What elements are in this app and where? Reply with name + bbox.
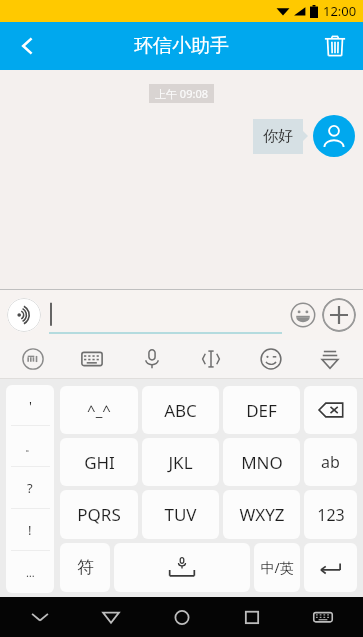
button[interactable] xyxy=(49,296,282,334)
button[interactable]: Space xyxy=(114,543,250,592)
button[interactable]: TUV xyxy=(142,490,219,539)
staticText: ! xyxy=(28,521,32,539)
button[interactable]: GHI xyxy=(60,438,138,486)
staticText: 你好 xyxy=(263,127,293,146)
button[interactable]: ^_^ xyxy=(60,386,138,434)
button[interactable]: Emoji panel xyxy=(254,342,288,376)
staticText: TUV xyxy=(164,503,197,526)
staticText: ? xyxy=(27,479,33,497)
button[interactable]: Back xyxy=(8,26,48,66)
staticText: JKL xyxy=(168,451,193,474)
staticText: DEF xyxy=(246,399,277,422)
button[interactable]: … xyxy=(6,551,54,593)
button[interactable]: ABC xyxy=(142,386,219,434)
button[interactable]: 123 xyxy=(304,490,357,539)
button[interactable]: Voice message xyxy=(7,298,41,332)
button[interactable]: Backspace xyxy=(304,386,357,434)
staticText: 12:00 xyxy=(323,2,357,20)
staticText: 。 xyxy=(25,440,36,454)
staticText: MNO xyxy=(241,451,283,474)
staticText: ' xyxy=(29,397,32,415)
staticText: 上午 09:08 xyxy=(155,86,208,101)
button[interactable]: ab xyxy=(304,438,357,486)
button[interactable]: 你好 xyxy=(253,117,303,155)
staticText: ab xyxy=(321,451,340,473)
button[interactable]: Recents xyxy=(234,599,270,635)
button[interactable]: DEF xyxy=(223,386,300,434)
staticText: 环信小助手 xyxy=(134,34,229,58)
button[interactable]: More xyxy=(322,298,356,332)
button[interactable]: JKL xyxy=(142,438,219,486)
button[interactable]: Enter xyxy=(304,543,357,592)
button[interactable]: ' xyxy=(6,385,54,426)
staticText: … xyxy=(26,565,35,580)
staticText: ^_^ xyxy=(87,400,111,420)
button[interactable]: Hide keyboard xyxy=(22,599,58,635)
staticText: GHI xyxy=(84,451,115,474)
button[interactable]: Hide keyboard xyxy=(313,342,347,376)
button[interactable]: IME logo xyxy=(16,342,50,376)
button[interactable]: ? xyxy=(6,467,54,509)
button[interactable]: Voice input xyxy=(135,342,169,376)
staticText: 中/英 xyxy=(260,558,294,577)
button[interactable]: Back xyxy=(93,599,129,635)
button[interactable]: 符 xyxy=(60,543,110,592)
button[interactable]: 中/英 xyxy=(254,543,300,592)
button[interactable]: PQRS xyxy=(60,490,138,539)
button[interactable]: Home xyxy=(164,599,200,635)
button[interactable]: MNO xyxy=(223,438,300,486)
button[interactable]: 。 xyxy=(6,426,54,467)
staticText: 符 xyxy=(77,557,94,578)
button[interactable]: ! xyxy=(6,509,54,551)
button[interactable]: Delete conversation xyxy=(315,26,355,66)
button[interactable]: Keyboard layout xyxy=(75,342,109,376)
staticText: PQRS xyxy=(77,503,121,526)
button[interactable]: Avatar xyxy=(313,115,355,157)
staticText: ABC xyxy=(164,399,197,422)
button[interactable]: Cursor xyxy=(194,342,228,376)
staticText: 123 xyxy=(317,504,345,526)
button[interactable]: WXYZ xyxy=(223,490,300,539)
staticText: WXYZ xyxy=(239,503,285,526)
button[interactable]: Emoji xyxy=(288,300,318,330)
button[interactable]: Switch keyboard xyxy=(305,599,341,635)
